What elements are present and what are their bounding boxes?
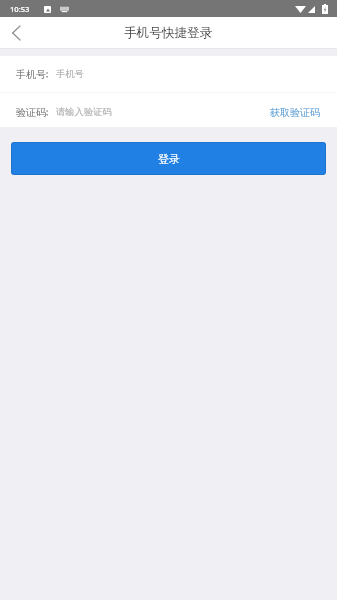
staticText: 登录 — [158, 152, 180, 166]
button[interactable]: 获取验证码 — [260, 100, 337, 125]
button[interactable]: 验证码 — [0, 93, 337, 127]
staticText: 手机号 — [16, 68, 46, 81]
staticText: 验证码 — [16, 106, 46, 119]
staticText: 获取验证码 — [270, 106, 320, 119]
button[interactable]: 手机号 — [0, 56, 337, 92]
button[interactable]: Back — [0, 17, 31, 48]
staticText: 手机号快捷登录 — [124, 25, 213, 41]
staticText: 10:53 — [10, 4, 30, 14]
staticText: 手机号 — [56, 68, 84, 80]
staticText: 请输入验证码 — [56, 106, 112, 118]
button[interactable]: 登录 — [12, 143, 325, 174]
